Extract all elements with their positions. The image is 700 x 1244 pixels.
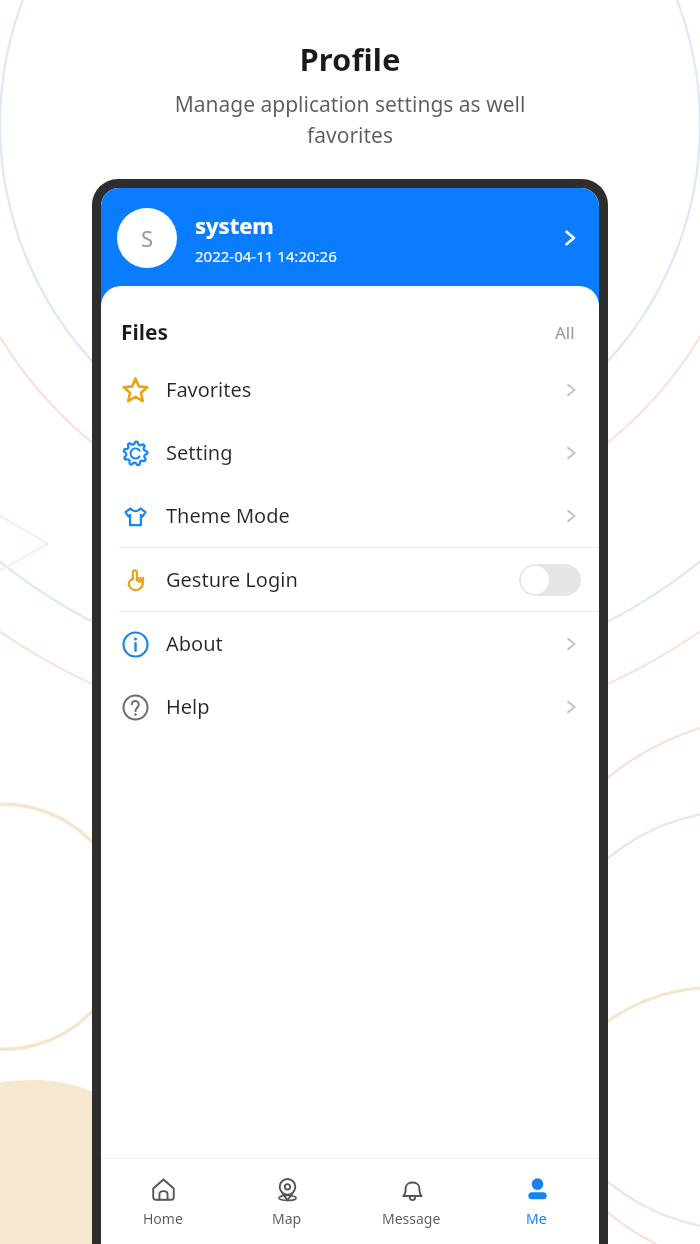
staticText: All [555,321,575,344]
button[interactable]: Gesture Login [101,548,599,611]
staticText: Help [166,693,210,720]
button[interactable]: All [551,317,579,348]
button[interactable]: Me [474,1158,599,1244]
staticText: Favorites [166,376,252,403]
button[interactable]: About [101,612,599,675]
staticText: Theme Mode [166,502,290,529]
staticText: Me [526,1209,547,1228]
staticText: S [141,223,154,253]
staticText: Profile [0,38,700,80]
staticText: Message [382,1209,441,1228]
staticText: system [195,210,274,240]
staticText: Files [121,318,169,347]
staticText: Setting [166,439,233,466]
staticText: Gesture Login [166,566,298,593]
button[interactable]: Theme Mode [101,484,599,547]
button[interactable]: Home [101,1158,225,1244]
button[interactable]: Help [101,675,599,738]
staticText: Map [272,1209,302,1228]
staticText: 2022-04-11 14:20:26 [195,246,337,266]
staticText: Home [143,1209,183,1228]
staticText: Manage application settings as well favo… [0,90,700,149]
staticText: About [166,630,223,657]
button[interactable]: Map [225,1158,349,1244]
other: Gesture Login toggle [519,564,581,596]
button[interactable]: Setting [101,421,599,484]
button[interactable]: Favorites [101,358,599,421]
button[interactable]: S [101,188,599,288]
button[interactable]: Message [349,1158,474,1244]
